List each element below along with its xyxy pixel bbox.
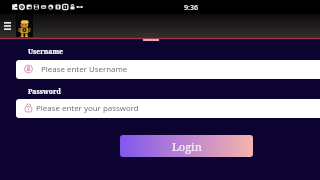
- staticText: Please enter your password: [36, 103, 139, 114]
- button[interactable]: Please enter Username: [16, 60, 320, 79]
- staticText: Please enter Username: [41, 64, 128, 75]
- button[interactable]: Open navigation menu: [0, 19, 14, 33]
- staticText: Username: [28, 47, 63, 56]
- button[interactable]: Please enter your password: [16, 99, 320, 118]
- staticText: Login: [137, 29, 158, 40]
- staticText: Login: [172, 139, 202, 154]
- staticText: 9:36: [184, 3, 198, 13]
- button[interactable]: Login: [120, 135, 253, 157]
- staticText: Password: [28, 87, 61, 96]
